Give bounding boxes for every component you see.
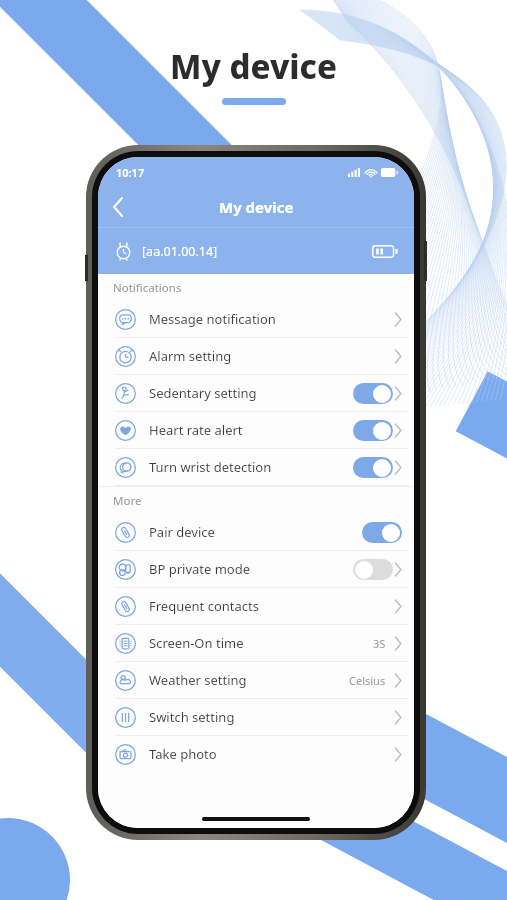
staticText: [aa.01.00.14]: [142, 243, 218, 260]
staticText: Heart rate alert: [149, 421, 243, 439]
staticText: Screen-On time: [149, 634, 244, 652]
button[interactable]: Message notification: [98, 301, 414, 337]
button[interactable]: Switch setting: [98, 699, 414, 735]
button[interactable]: Toggle on: [362, 522, 402, 543]
staticText: Pair device: [149, 523, 215, 541]
button[interactable]: Toggle on: [353, 383, 393, 404]
staticText: Weather setting: [149, 671, 247, 689]
button[interactable]: Weather setting: [98, 662, 414, 698]
button[interactable]: Pair device: [98, 514, 414, 550]
staticText: My device: [170, 44, 338, 89]
staticText: 3S: [373, 636, 386, 651]
button[interactable]: Sedentary setting: [98, 375, 414, 411]
staticText: My device: [219, 197, 294, 217]
button[interactable]: Toggle on: [353, 420, 393, 441]
staticText: BP private mode: [149, 560, 251, 578]
button[interactable]: Back: [98, 187, 138, 227]
button[interactable]: Heart rate alert: [98, 412, 414, 448]
button[interactable]: Turn wrist detection: [98, 449, 414, 485]
button[interactable]: Frequent contacts: [98, 588, 414, 624]
staticText: Switch setting: [149, 708, 235, 726]
staticText: Turn wrist detection: [149, 458, 272, 476]
staticText: Take photo: [149, 745, 217, 763]
button[interactable]: Screen-On time: [98, 625, 414, 661]
staticText: Celsius: [349, 673, 386, 688]
staticText: Alarm setting: [149, 347, 232, 365]
staticText: Notifications: [113, 280, 182, 296]
staticText: More: [113, 493, 142, 509]
button[interactable]: Toggle off: [353, 559, 393, 580]
button[interactable]: BP private mode: [98, 551, 414, 587]
button[interactable]: Take photo: [98, 736, 414, 772]
staticText: Frequent contacts: [149, 597, 259, 615]
button[interactable]: Alarm setting: [98, 338, 414, 374]
button[interactable]: Toggle on: [353, 457, 393, 478]
button[interactable]: [aa.01.00.14]: [98, 228, 414, 274]
staticText: 10:17: [116, 165, 145, 180]
staticText: Message notification: [149, 310, 276, 328]
staticText: Sedentary setting: [149, 384, 257, 402]
